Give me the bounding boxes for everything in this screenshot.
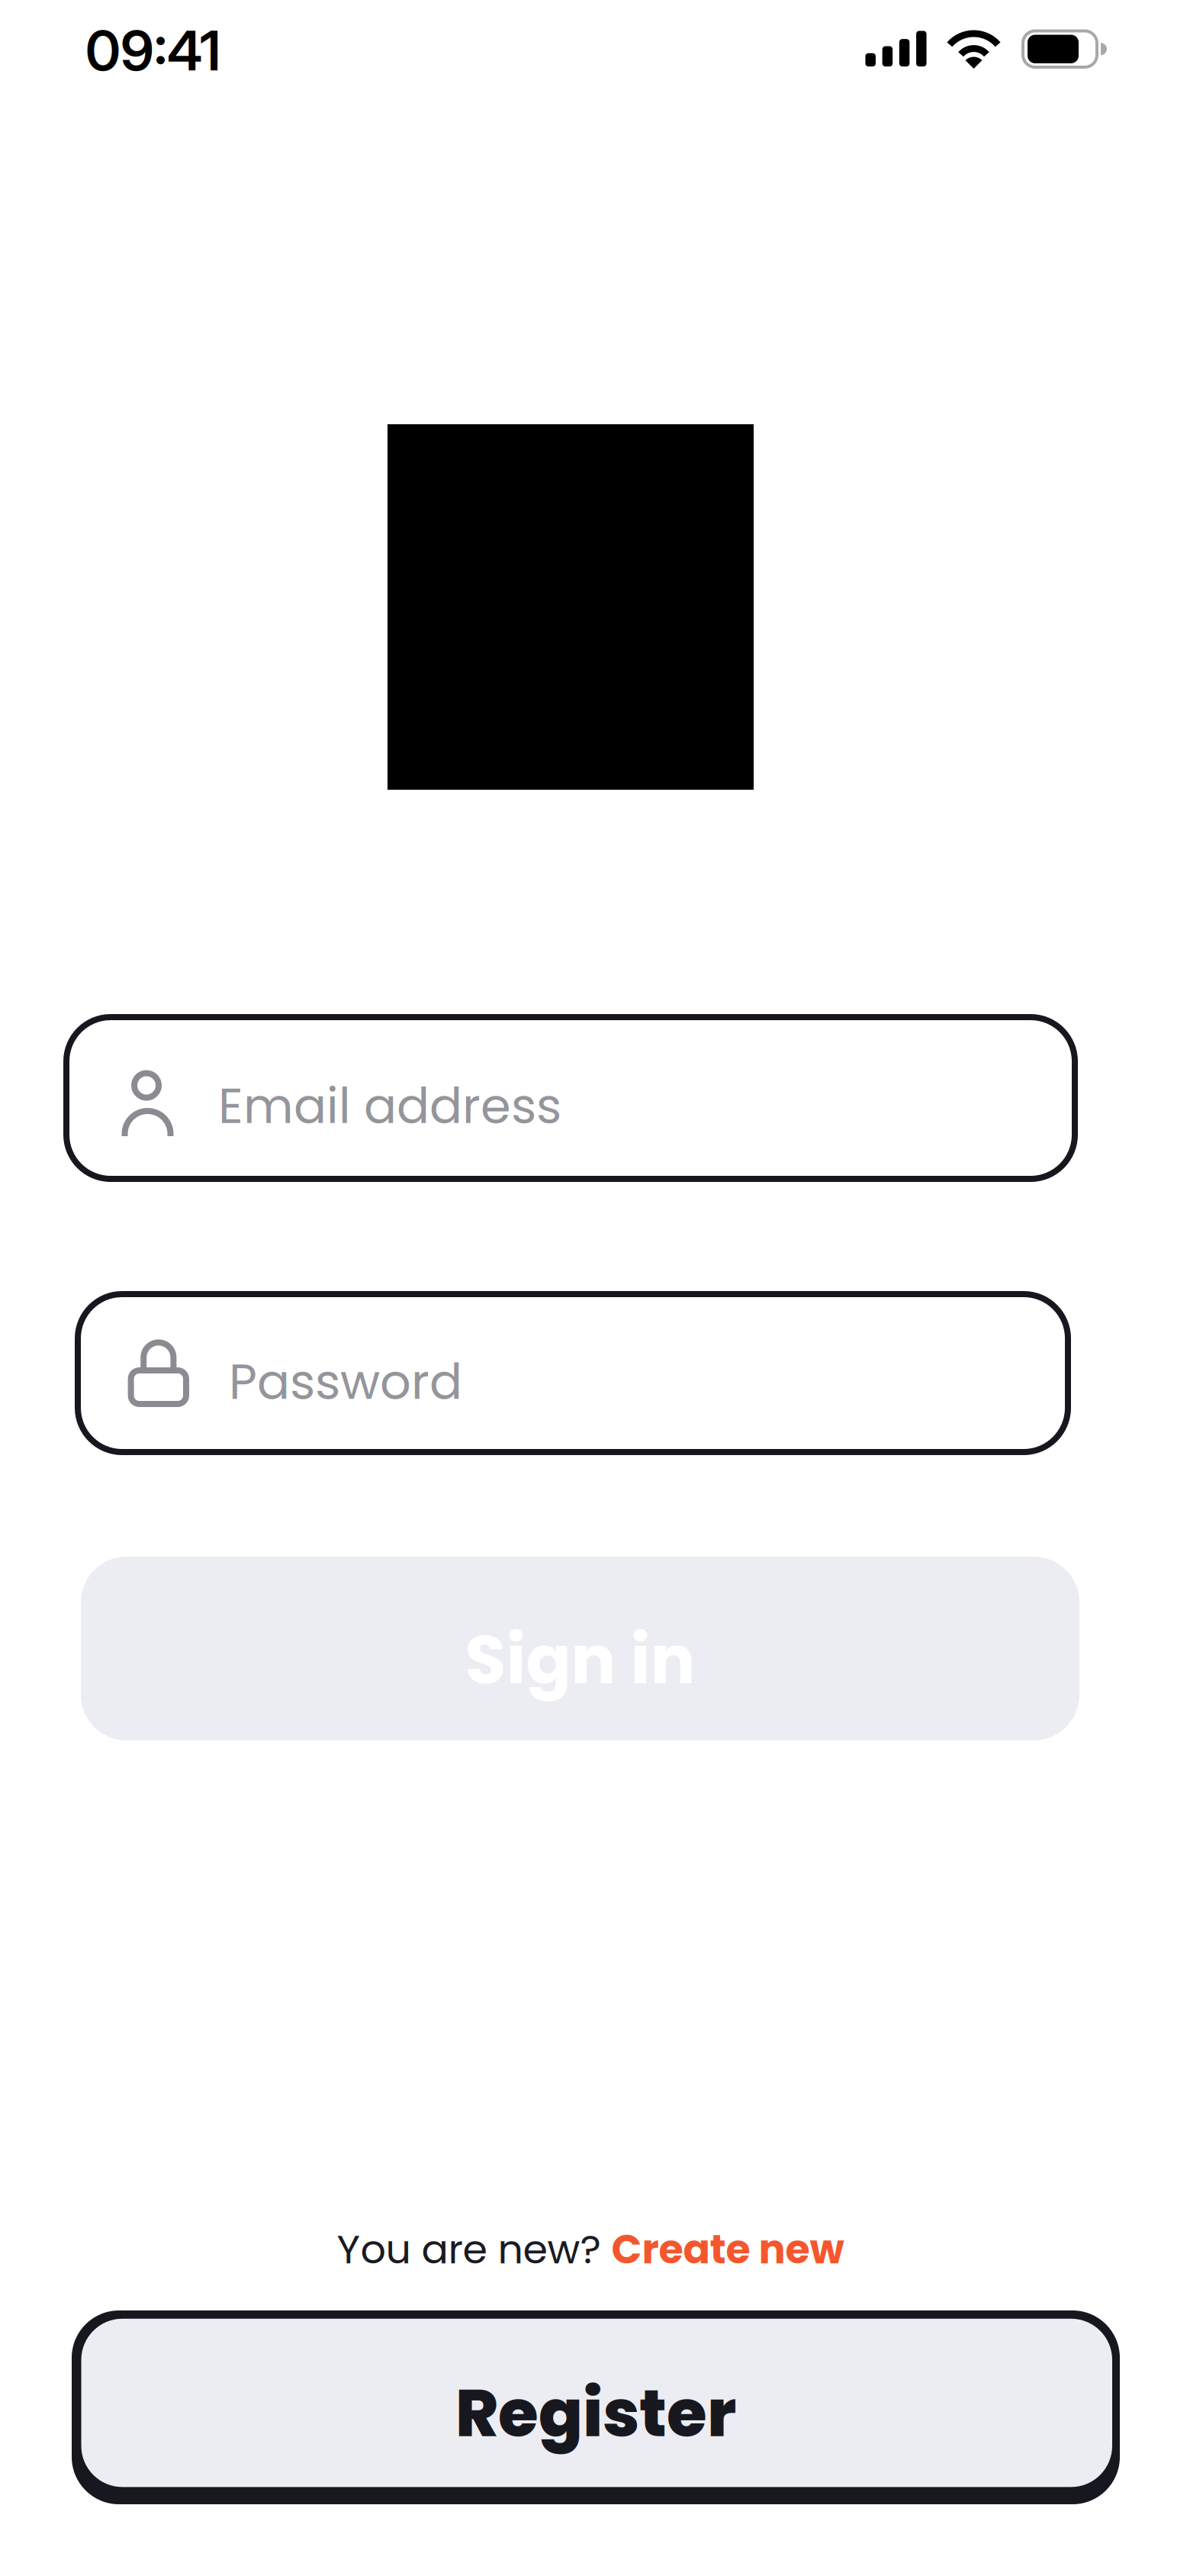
staticText: Register — [455, 2368, 736, 2459]
button[interactable]: Password — [75, 1291, 1071, 1455]
staticText: 09:41 — [85, 17, 220, 84]
button[interactable]: Email address — [63, 1014, 1078, 1182]
button[interactable]: Sign in — [81, 1557, 1079, 1740]
button[interactable]: Create new — [611, 2221, 844, 2277]
staticText: Password — [229, 1348, 462, 1416]
staticText: Create new — [611, 2221, 844, 2277]
staticText: Email address — [218, 1072, 561, 1140]
staticText: Sign in — [465, 1613, 695, 1707]
staticText: You are new? — [337, 2221, 611, 2277]
button[interactable]: Register — [72, 2310, 1120, 2504]
